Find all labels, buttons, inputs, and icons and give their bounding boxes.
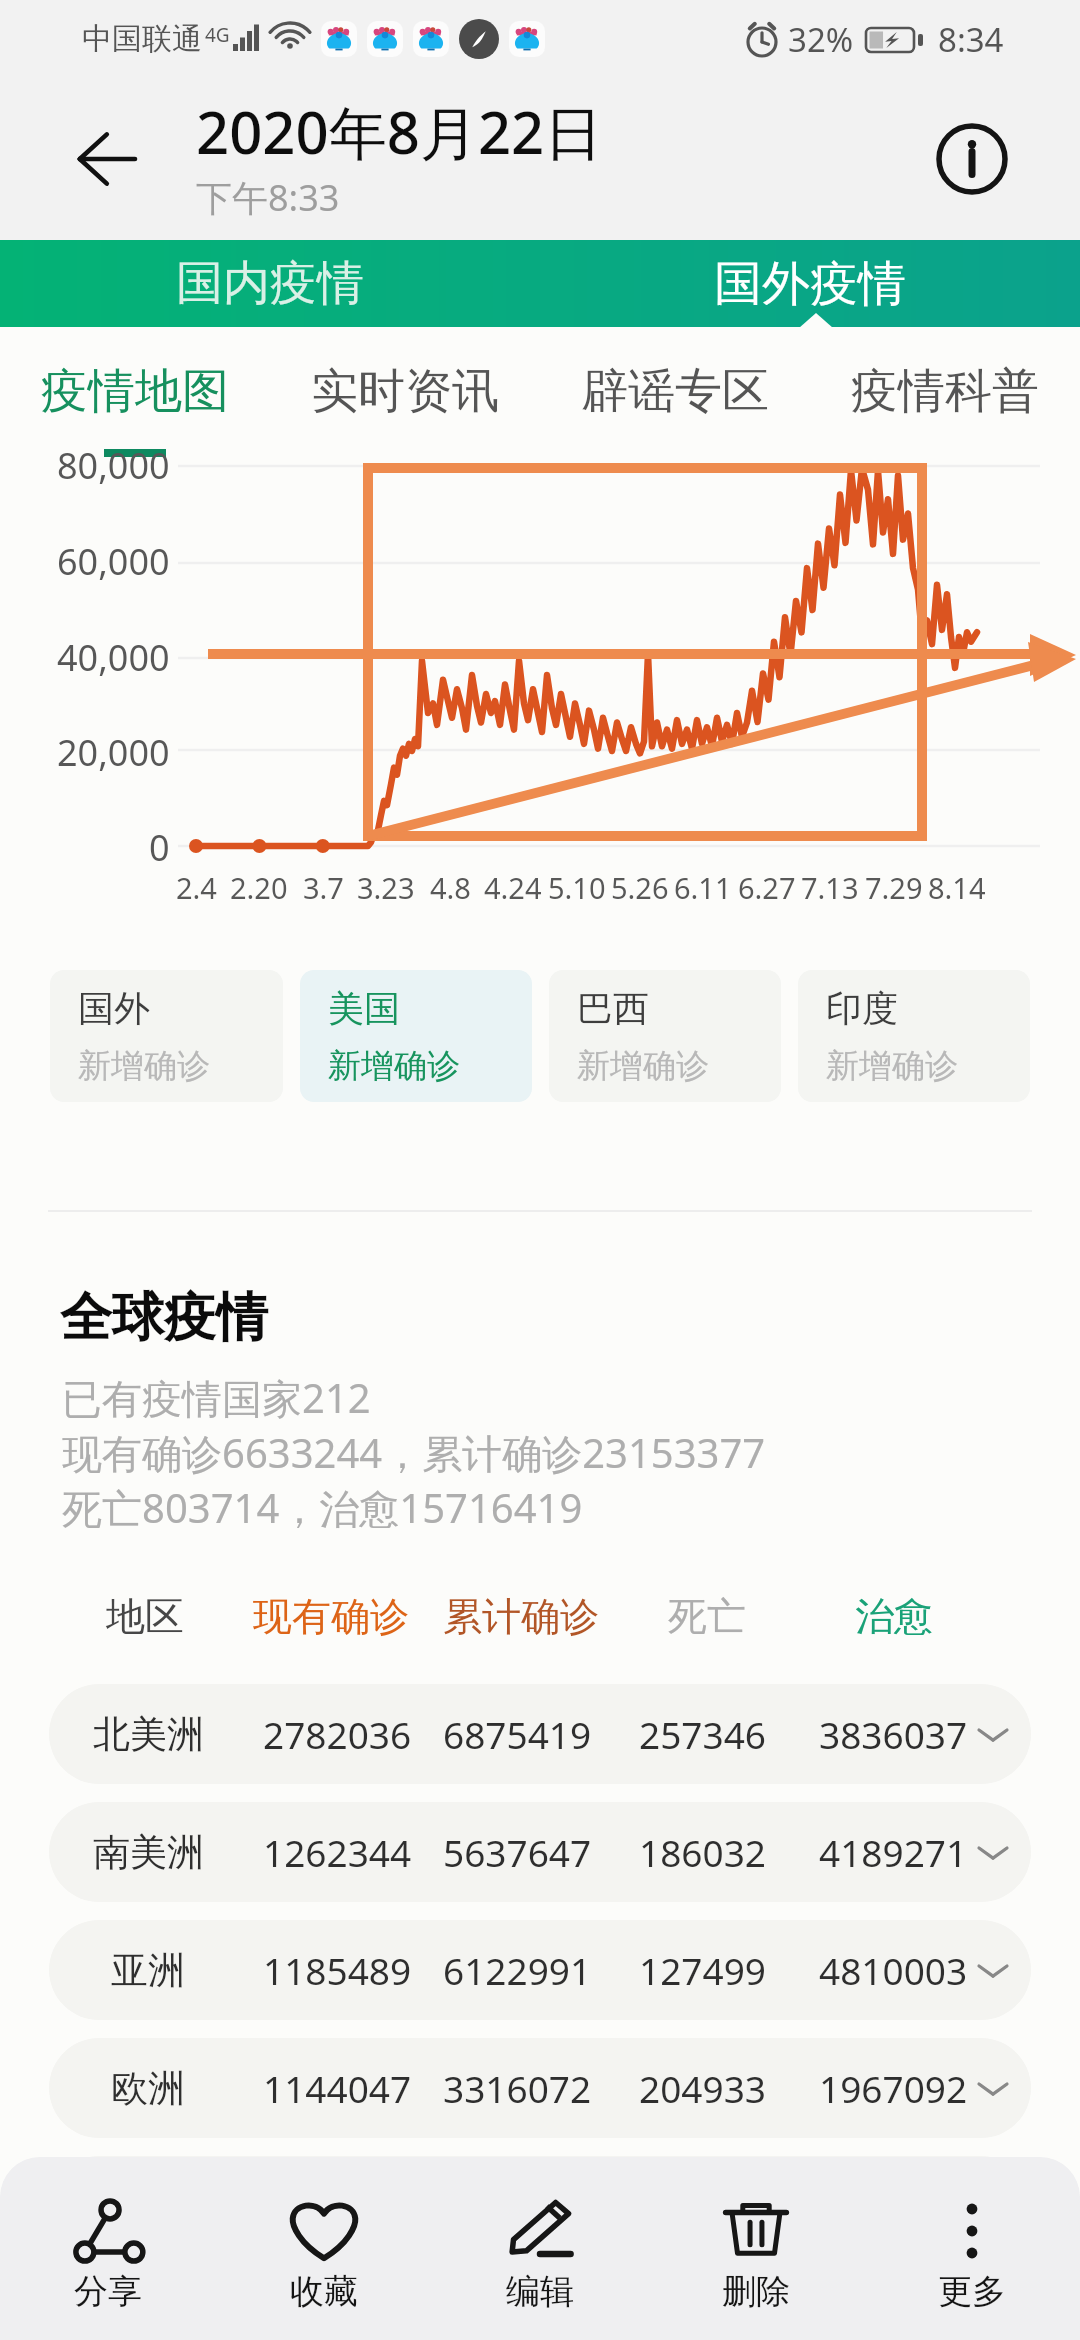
staticText: 6122991 (443, 1945, 592, 1995)
button[interactable]: 疫情地图 (0, 327, 270, 455)
staticText: 中国联通 (82, 20, 202, 58)
staticText: 4189271 (819, 1827, 968, 1877)
button[interactable]: 美国 (300, 970, 532, 1102)
staticText: 4G (205, 22, 230, 48)
staticText: 欧洲 (111, 2065, 185, 2112)
staticText: 4.24 (484, 868, 542, 907)
staticText: 5637647 (443, 1827, 592, 1877)
staticText: 疫情地图 (41, 362, 229, 421)
button[interactable]: 实时资讯 (270, 327, 540, 455)
staticText: 8:34 (938, 17, 1004, 62)
staticText: 死亡 (668, 1592, 746, 1641)
button[interactable]: Info (922, 109, 1022, 209)
staticText: 2.20 (230, 868, 288, 907)
staticText: 地区 (106, 1592, 184, 1641)
staticText: 非洲 (111, 2183, 185, 2230)
staticText: 7.29 (865, 868, 923, 907)
staticText: 6.27 (738, 868, 796, 907)
staticText: 60,000 (57, 537, 170, 586)
staticText: 新增确诊 (826, 1045, 958, 1087)
button[interactable]: 国内疫情 (0, 240, 540, 327)
button[interactable]: 非洲 (49, 2156, 1031, 2256)
button[interactable]: 亚洲 (49, 1920, 1031, 2020)
staticText: 1262344 (263, 1827, 412, 1877)
staticText: 1191260 (443, 2181, 592, 2231)
staticText: 28342 (649, 2181, 755, 2231)
button[interactable]: 北美洲 (49, 1684, 1031, 1784)
staticText: 新增确诊 (78, 1045, 210, 1087)
button[interactable]: 印度 (798, 970, 1030, 1102)
staticText: 6.11 (674, 868, 732, 907)
staticText: 254419 (274, 2181, 401, 2231)
staticText: 实时资讯 (311, 362, 499, 421)
staticText: 编辑 (506, 2270, 574, 2313)
staticText: 更多 (938, 2270, 1006, 2313)
button[interactable]: 巴西 (549, 970, 781, 1102)
staticText: 死亡803714，治愈15716419 (62, 1480, 583, 1535)
button[interactable]: 分享 (0, 2157, 216, 2340)
staticText: 辟谣专区 (581, 362, 769, 421)
staticText: 3836037 (819, 1709, 968, 1759)
staticText: 国内疫情 (176, 254, 364, 313)
button[interactable]: 国外疫情 (540, 240, 1080, 327)
staticText: 1185489 (263, 1945, 412, 1995)
staticText: 1967092 (819, 2063, 968, 2113)
staticText: 0 (149, 823, 170, 872)
button[interactable]: 编辑 (432, 2157, 648, 2340)
staticText: 现有确诊 (253, 1592, 409, 1641)
staticText: 新增确诊 (328, 1045, 460, 1087)
staticText: 5.26 (611, 868, 669, 907)
button[interactable]: 疫情科普 (810, 327, 1080, 455)
staticText: 已有疫情国家212 (62, 1370, 371, 1425)
staticText: 2782036 (263, 1709, 412, 1759)
staticText: 3.23 (357, 868, 415, 907)
staticText: 3316072 (443, 2063, 592, 2113)
staticText: 127499 (639, 1945, 766, 1995)
staticText: 累计确诊 (443, 1592, 599, 1641)
button[interactable]: 更多 (864, 2157, 1080, 2340)
staticText: 北美洲 (93, 1711, 204, 1758)
staticText: 国外 (78, 986, 150, 1031)
staticText: 6875419 (443, 1709, 592, 1759)
staticText: 亚洲 (111, 1947, 185, 1994)
staticText: 2.4 (176, 868, 217, 907)
staticText: 印度 (826, 986, 898, 1031)
staticText: 分享 (74, 2270, 142, 2313)
staticText: 4.8 (430, 868, 471, 907)
staticText: 南美洲 (93, 1829, 204, 1876)
staticText: 40,000 (57, 633, 170, 682)
button[interactable]: 辟谣专区 (540, 327, 810, 455)
staticText: 5.10 (548, 868, 606, 907)
button[interactable]: 南美洲 (49, 1802, 1031, 1902)
staticText: 32% (788, 17, 854, 62)
staticText: 20,000 (57, 728, 170, 777)
staticText: 7.13 (801, 868, 859, 907)
staticText: 全球疫情 (60, 1285, 268, 1351)
staticText: 204933 (639, 2063, 766, 2113)
button[interactable]: Back (52, 103, 164, 215)
button[interactable]: 删除 (648, 2157, 864, 2340)
staticText: 美国 (328, 986, 400, 1031)
staticText: 新增确诊 (577, 1045, 709, 1087)
button[interactable]: 欧洲 (49, 2038, 1031, 2138)
staticText: 3.7 (303, 868, 344, 907)
staticText: 治愈 (855, 1592, 933, 1641)
staticText: 收藏 (290, 2270, 358, 2313)
staticText: 186032 (639, 1827, 766, 1877)
staticText: 删除 (722, 2270, 790, 2313)
staticText: 现有确诊6633244，累计确诊23153377 (62, 1425, 766, 1480)
staticText: 1144047 (263, 2063, 412, 2113)
staticText: 2020年8月22日 (196, 92, 603, 171)
staticText: 257346 (639, 1709, 766, 1759)
staticText: 80,000 (57, 441, 170, 490)
staticText: 4810003 (819, 1945, 968, 1995)
button[interactable]: 收藏 (216, 2157, 432, 2340)
staticText: 巴西 (577, 986, 649, 1031)
staticText: 国外疫情 (714, 254, 906, 314)
staticText: 下午8:33 (196, 173, 340, 222)
button[interactable]: 国外 (50, 970, 283, 1102)
staticText: 疫情科普 (851, 362, 1039, 421)
staticText: 8.14 (928, 868, 986, 907)
